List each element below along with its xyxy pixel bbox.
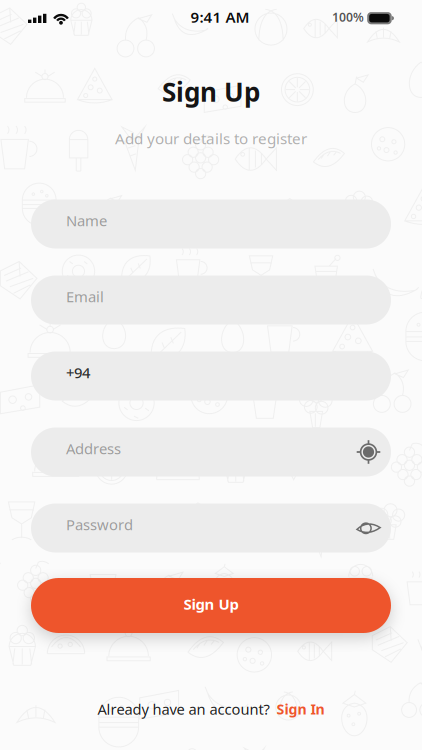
staticText: Sign Up: [183, 594, 238, 614]
staticText: 100%: [332, 9, 364, 25]
staticText: Name: [66, 210, 107, 231]
button[interactable]: Sign In: [269, 699, 324, 719]
staticText: +94: [66, 362, 90, 383]
button[interactable]: Sign Up: [31, 578, 391, 633]
staticText: Address: [66, 438, 121, 459]
button[interactable]: Show password: [356, 521, 381, 535]
staticText: Already have an account?: [97, 699, 269, 719]
staticText: Add your details to register: [115, 128, 307, 149]
staticText: Sign In: [276, 699, 324, 719]
staticText: Password: [66, 514, 133, 535]
staticText: 9:41 AM: [190, 7, 249, 27]
staticText: Sign Up: [162, 74, 260, 109]
button[interactable]: Use current location: [356, 439, 381, 464]
staticText: Email: [66, 286, 104, 307]
